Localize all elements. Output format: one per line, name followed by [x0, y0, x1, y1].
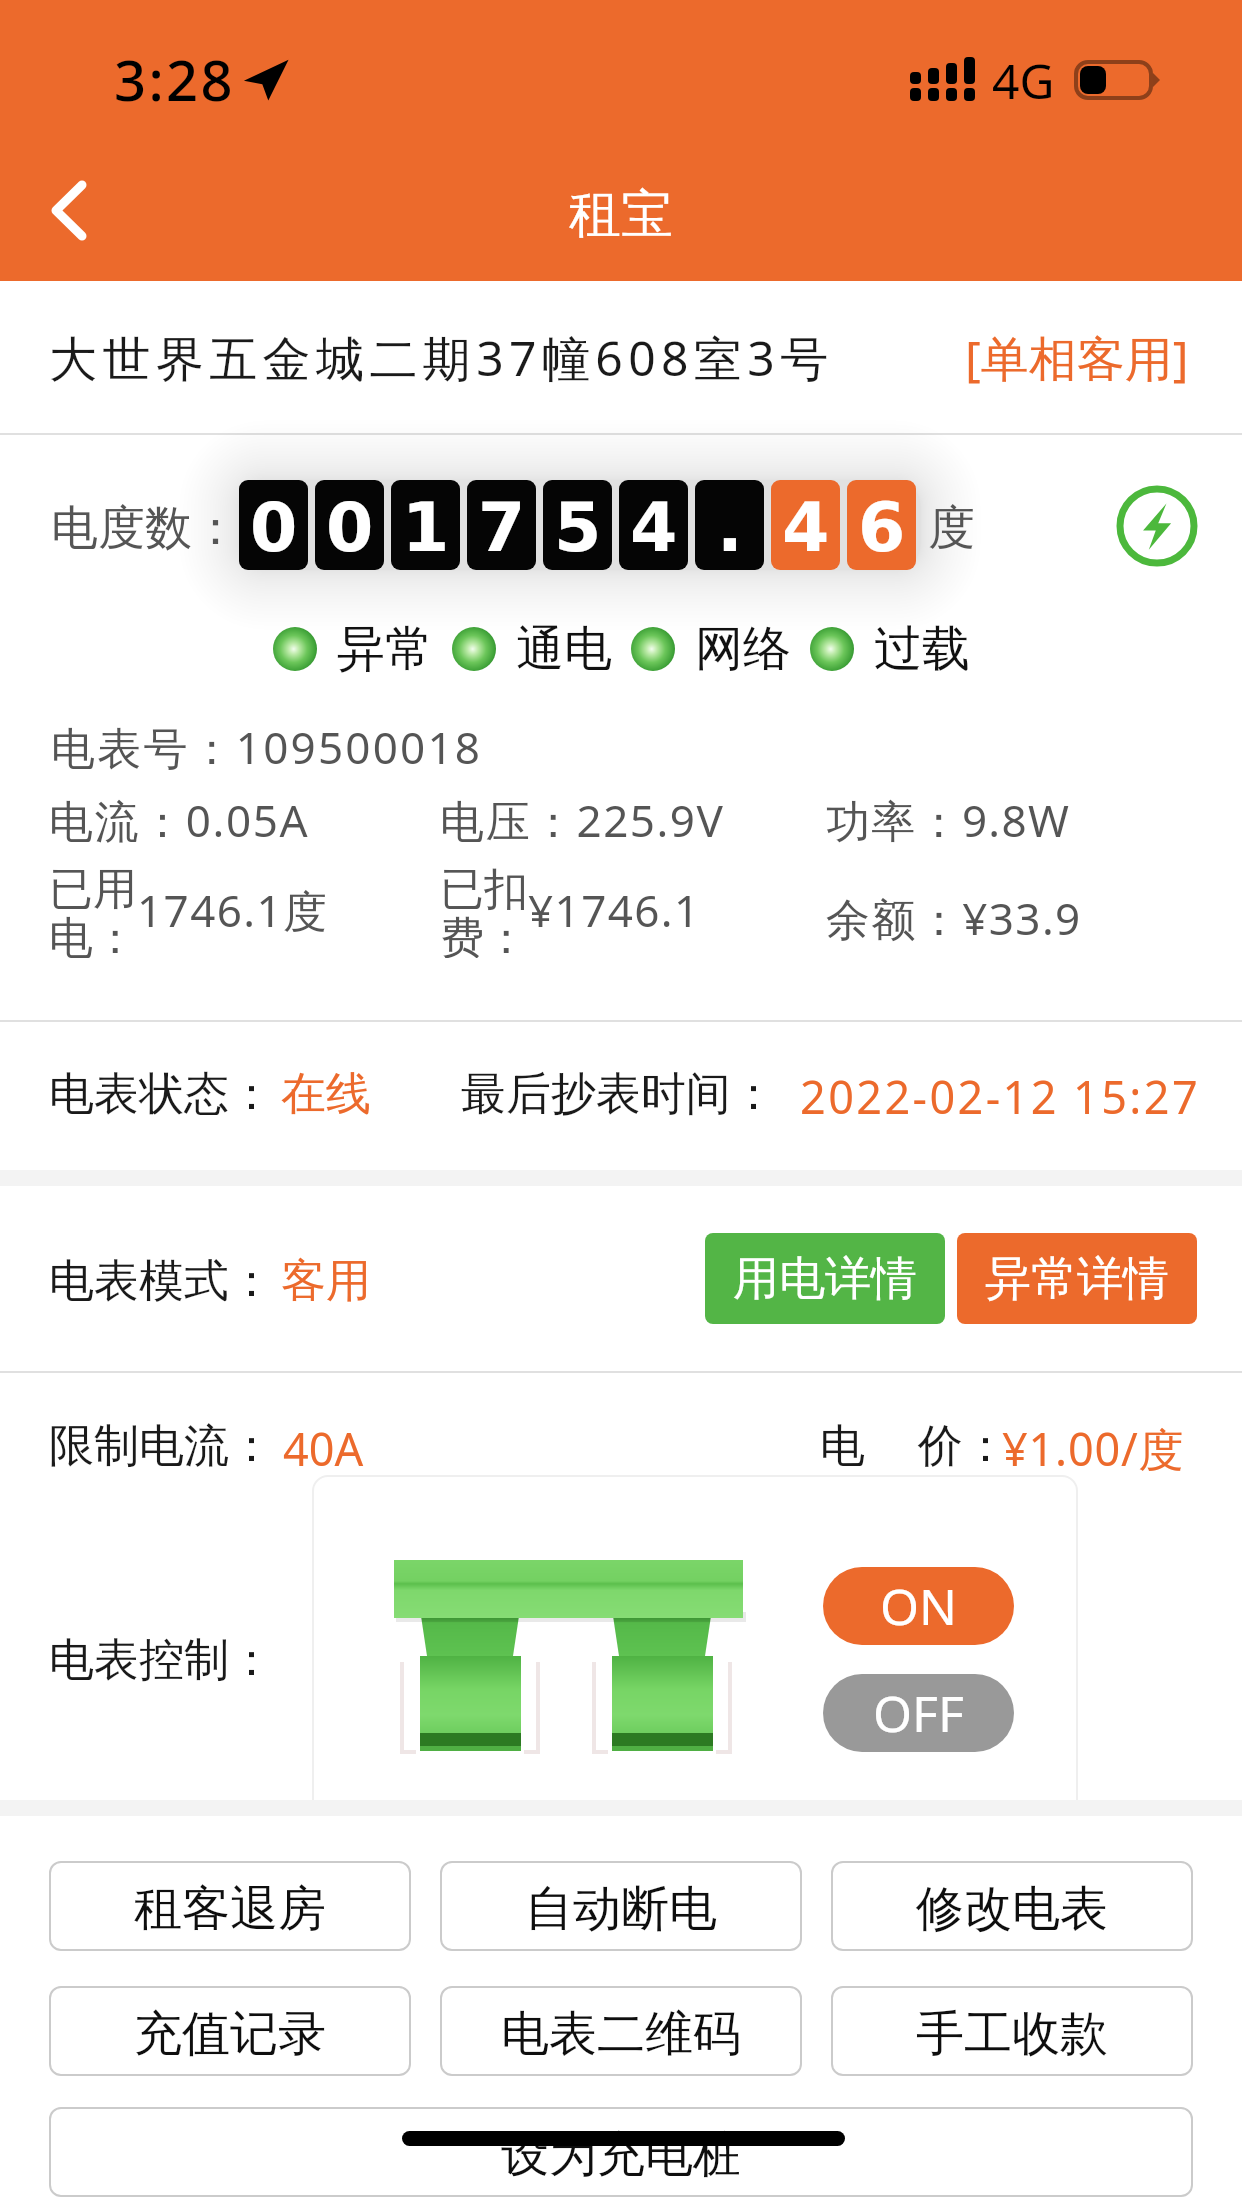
staticText: 价： [918, 1418, 1008, 1475]
button[interactable]: 修改电表 [831, 1861, 1193, 1951]
staticText: 在线 [281, 1066, 371, 1123]
staticText: 电表模式： [49, 1253, 274, 1310]
staticText: 充值记录 [134, 2004, 326, 2064]
staticText: 异常 [337, 619, 433, 679]
staticText: 3:28 [114, 41, 235, 117]
staticText: 修改电表 [916, 1879, 1108, 1939]
staticText: 功率：9.8W [826, 790, 1071, 850]
staticText: 电流：0.05A [49, 790, 310, 850]
button[interactable]: 异常详情 [957, 1233, 1197, 1324]
staticText: 异常详情 [985, 1250, 1169, 1308]
staticText: 4G [992, 48, 1055, 113]
staticText: 客用 [281, 1253, 371, 1310]
staticText: 电表二维码 [501, 2004, 741, 2064]
staticText: 过载 [874, 619, 970, 679]
button[interactable]: 设为充电桩 [49, 2107, 1193, 2197]
staticText: 通电 [516, 619, 612, 679]
staticText: 2022-02-12 15:27 [800, 1066, 1201, 1127]
button[interactable]: 租客退房 [49, 1861, 411, 1951]
staticText: 6 [858, 488, 906, 567]
staticText: 0 [326, 488, 374, 567]
staticText: 大世界五金城二期37幢608室3号 [49, 325, 834, 391]
staticText: 电度数： [51, 499, 239, 558]
staticText: 余额：¥33.9 [826, 888, 1082, 948]
staticText: ¥1.00/度 [1002, 1418, 1185, 1479]
staticText: 4 [630, 488, 678, 567]
staticText: ¥1746.1 [528, 880, 701, 940]
staticText: 用电详情 [733, 1250, 917, 1308]
staticText: 电表控制： [49, 1632, 274, 1689]
button[interactable]: 自动断电 [440, 1861, 802, 1951]
staticText: 1746.1度 [137, 880, 329, 940]
staticText: 电表号：109500018 [51, 717, 483, 777]
button[interactable]: 电表二维码 [440, 1986, 802, 2076]
staticText: 最后抄表时间： [461, 1066, 776, 1123]
button[interactable]: 大世界五金城二期37幢608室3号 [0, 283, 1242, 433]
staticText: 已用 电： [49, 862, 137, 958]
staticText: . [717, 488, 743, 567]
button[interactable]: 手工收款 [831, 1986, 1193, 2076]
staticText: 租宝 [569, 182, 673, 248]
staticText: 电压：225.9V [440, 790, 725, 850]
staticText: 设为充电桩 [501, 2125, 741, 2185]
button[interactable]: OFF [823, 1674, 1014, 1752]
staticText: 电 [820, 1418, 865, 1475]
button[interactable]: Power on [1116, 485, 1198, 567]
staticText: 网络 [695, 619, 791, 679]
button[interactable]: ON [823, 1567, 1014, 1645]
staticText: 5 [554, 488, 602, 567]
staticText: 手工收款 [916, 2004, 1108, 2064]
staticText: 限制电流： [49, 1418, 274, 1475]
staticText: 自动断电 [525, 1879, 717, 1939]
staticText: 1 [402, 488, 450, 567]
staticText: 电表状态： [49, 1066, 274, 1123]
staticText: 租客退房 [134, 1879, 326, 1939]
staticText: [单相客用] [965, 325, 1189, 391]
staticText: 40A [283, 1418, 364, 1479]
button[interactable]: 充值记录 [49, 1986, 411, 2076]
staticText: ON [880, 1572, 958, 1640]
staticText: 0 [250, 488, 298, 567]
staticText: 4 [782, 488, 830, 567]
staticText: 已扣 费： [440, 862, 528, 958]
button[interactable]: 用电详情 [705, 1233, 945, 1324]
button[interactable]: Back [10, 152, 130, 272]
staticText: 7 [478, 488, 526, 567]
staticText: OFF [873, 1679, 964, 1747]
staticText: 度 [928, 499, 975, 558]
